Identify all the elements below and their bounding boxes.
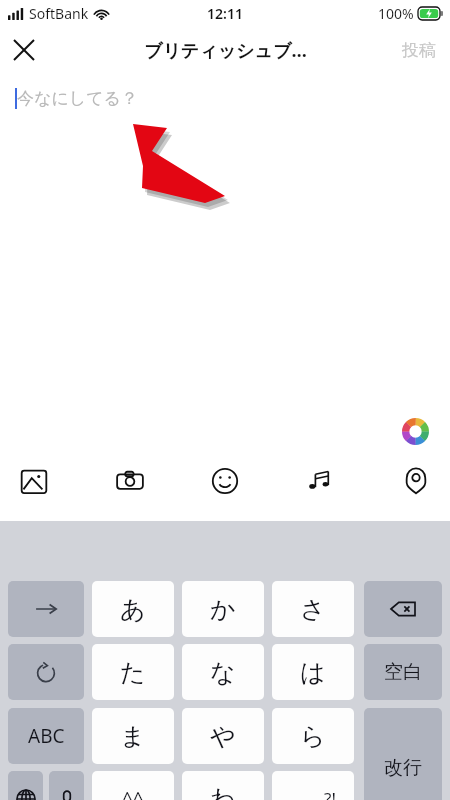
staticText: さ — [300, 594, 326, 625]
button[interactable]: は — [272, 644, 354, 700]
staticText: あ — [120, 594, 146, 625]
staticText: 空白 — [384, 660, 422, 684]
button[interactable]: か — [182, 581, 264, 637]
button[interactable]: ^^ — [92, 771, 174, 800]
staticText: か — [210, 594, 236, 625]
button[interactable]: Close — [0, 26, 48, 74]
staticText: ブリティッシュブ… — [144, 38, 307, 63]
button[interactable]: Next candidate — [8, 581, 84, 637]
staticText: 100% — [378, 4, 414, 23]
staticText: ^^ — [122, 786, 144, 800]
button[interactable]: Color theme — [398, 414, 432, 448]
button[interactable]: 空白 — [364, 644, 442, 700]
staticText: た — [120, 657, 146, 688]
button[interactable]: ら — [272, 708, 354, 764]
button[interactable]: ABC — [8, 708, 84, 764]
staticText: な — [210, 657, 236, 688]
staticText: 、。?! — [290, 787, 336, 800]
staticText: ま — [120, 721, 146, 752]
staticText: ら — [300, 721, 326, 752]
button[interactable]: Photo — [12, 459, 56, 503]
button[interactable]: Location — [394, 459, 438, 503]
button[interactable]: 改行 — [364, 708, 442, 800]
staticText: 今なにしてる？ — [17, 88, 138, 109]
button[interactable]: た — [92, 644, 174, 700]
button[interactable]: や — [182, 708, 264, 764]
button[interactable]: わ — [182, 771, 264, 800]
staticText: ABC — [28, 723, 65, 749]
button[interactable]: 投稿 — [402, 40, 436, 61]
staticText: 12:11 — [207, 4, 243, 23]
button[interactable]: ま — [92, 708, 174, 764]
staticText: は — [300, 657, 326, 688]
button[interactable]: Delete — [364, 581, 442, 637]
button[interactable]: さ — [272, 581, 354, 637]
button[interactable]: Undo — [8, 644, 84, 700]
staticText: や — [210, 721, 236, 752]
staticText: わ — [210, 783, 236, 800]
staticText: SoftBank — [29, 4, 89, 23]
staticText: 改行 — [384, 756, 422, 780]
button[interactable]: Emoji — [203, 459, 247, 503]
button[interactable]: Music — [299, 459, 343, 503]
button[interactable]: な — [182, 644, 264, 700]
button[interactable]: Voice input — [49, 771, 84, 800]
button[interactable]: 、。?! — [272, 771, 354, 800]
button[interactable]: Change language — [8, 771, 43, 800]
button[interactable]: あ — [92, 581, 174, 637]
staticText: 投稿 — [402, 40, 436, 61]
button[interactable]: Camera — [108, 459, 152, 503]
